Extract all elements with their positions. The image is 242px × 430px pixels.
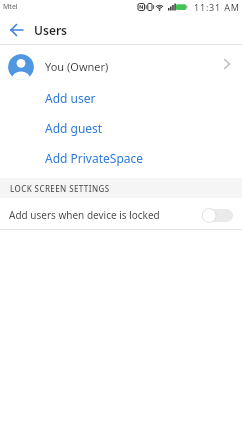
staticText: Add user xyxy=(45,90,96,106)
staticText: Add PrivateSpace xyxy=(45,150,144,166)
staticText: You (Owner) xyxy=(45,59,109,74)
staticText: Mtel xyxy=(3,2,18,12)
staticText: 11:31 AM xyxy=(194,1,240,13)
button[interactable]: You (Owner) xyxy=(0,45,242,83)
staticText: Add guest xyxy=(45,120,103,136)
staticText: Add users when device is locked xyxy=(9,208,160,222)
button[interactable]: Add PrivateSpace xyxy=(0,143,242,173)
staticText: Users xyxy=(34,22,68,38)
button[interactable] xyxy=(0,16,34,44)
staticText: LOCK SCREEN SETTINGS xyxy=(10,183,110,194)
button[interactable]: Add guest xyxy=(0,113,242,143)
button[interactable]: Add user xyxy=(0,83,242,113)
button[interactable]: Add users when device is locked xyxy=(0,198,242,229)
